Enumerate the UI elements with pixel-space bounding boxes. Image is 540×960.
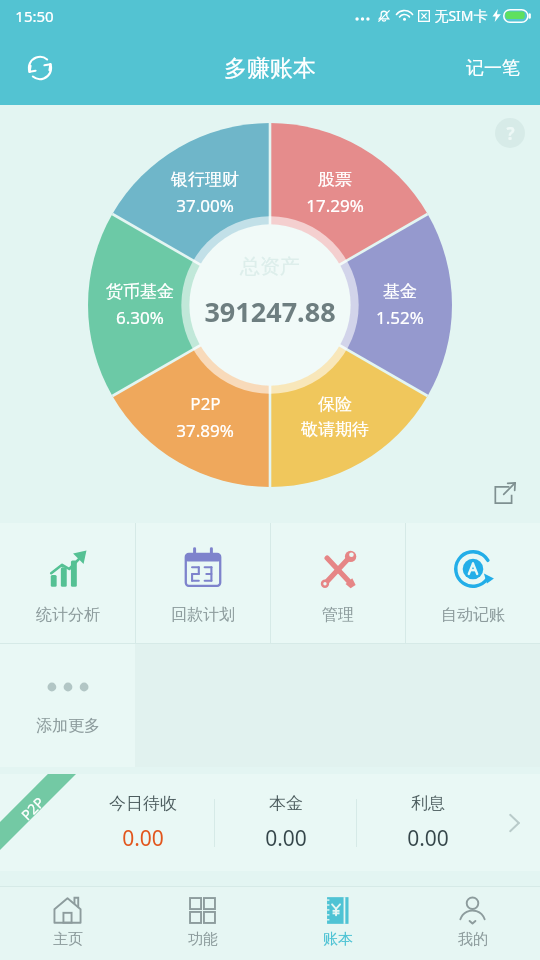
staticText: 15:50 bbox=[15, 6, 54, 26]
staticText: P2P bbox=[190, 392, 221, 415]
staticText: 17.29% bbox=[306, 194, 364, 217]
staticText: ? bbox=[506, 122, 515, 145]
staticText: 391247.88 bbox=[204, 293, 336, 330]
staticText: 37.89% bbox=[176, 419, 234, 442]
staticText: 保险 bbox=[318, 394, 352, 415]
button[interactable]: 管理 bbox=[271, 523, 405, 643]
staticText: 今日待收 bbox=[109, 793, 177, 814]
staticText: 无SIM卡 bbox=[434, 6, 488, 25]
staticText: 我的 bbox=[458, 930, 488, 949]
staticText: 股票 bbox=[318, 169, 352, 190]
staticText: 回款计划 bbox=[171, 605, 235, 625]
staticText: P2P bbox=[17, 793, 48, 824]
staticText: 记一笔 bbox=[466, 57, 520, 80]
staticText: 6.30% bbox=[116, 306, 164, 329]
staticText: 功能 bbox=[188, 930, 218, 949]
staticText: 货币基金 bbox=[106, 281, 174, 302]
staticText: 多赚账本 bbox=[224, 54, 316, 83]
button[interactable]: 功能 bbox=[135, 887, 270, 960]
button[interactable]: 添加更多 bbox=[0, 644, 135, 767]
button[interactable]: 记一笔 bbox=[460, 45, 526, 92]
staticText: 1.52% bbox=[376, 306, 424, 329]
staticText: 账本 bbox=[323, 930, 353, 949]
staticText: 管理 bbox=[322, 605, 354, 625]
button[interactable]: 主页 bbox=[0, 887, 135, 960]
staticText: 基金 bbox=[383, 281, 417, 302]
button[interactable]: 回款计划 bbox=[136, 523, 270, 643]
staticText: 0.00 bbox=[407, 824, 449, 853]
staticText: 敬请期待 bbox=[301, 419, 369, 440]
button[interactable]: 我的 bbox=[405, 887, 540, 960]
staticText: 本金 bbox=[269, 793, 303, 814]
staticText: 0.00 bbox=[265, 824, 307, 853]
staticText: 37.00% bbox=[176, 194, 234, 217]
staticText: 自动记账 bbox=[441, 605, 505, 625]
button[interactable]: Help bbox=[492, 115, 528, 151]
staticText: 主页 bbox=[53, 930, 83, 949]
button[interactable]: 自动记账 bbox=[406, 523, 540, 643]
staticText: 利息 bbox=[411, 793, 445, 814]
button[interactable]: 统计分析 bbox=[0, 523, 135, 643]
staticText: 0.00 bbox=[122, 824, 164, 853]
staticText: 银行理财 bbox=[171, 169, 239, 190]
button[interactable]: Share bbox=[486, 474, 524, 512]
button[interactable]: 账本 bbox=[270, 887, 405, 960]
button[interactable]: Refresh bbox=[16, 44, 64, 92]
staticText: 统计分析 bbox=[36, 605, 100, 625]
staticText: 添加更多 bbox=[36, 716, 100, 736]
button[interactable]: P2P bbox=[0, 774, 540, 871]
staticText: 总资产 bbox=[240, 254, 300, 279]
